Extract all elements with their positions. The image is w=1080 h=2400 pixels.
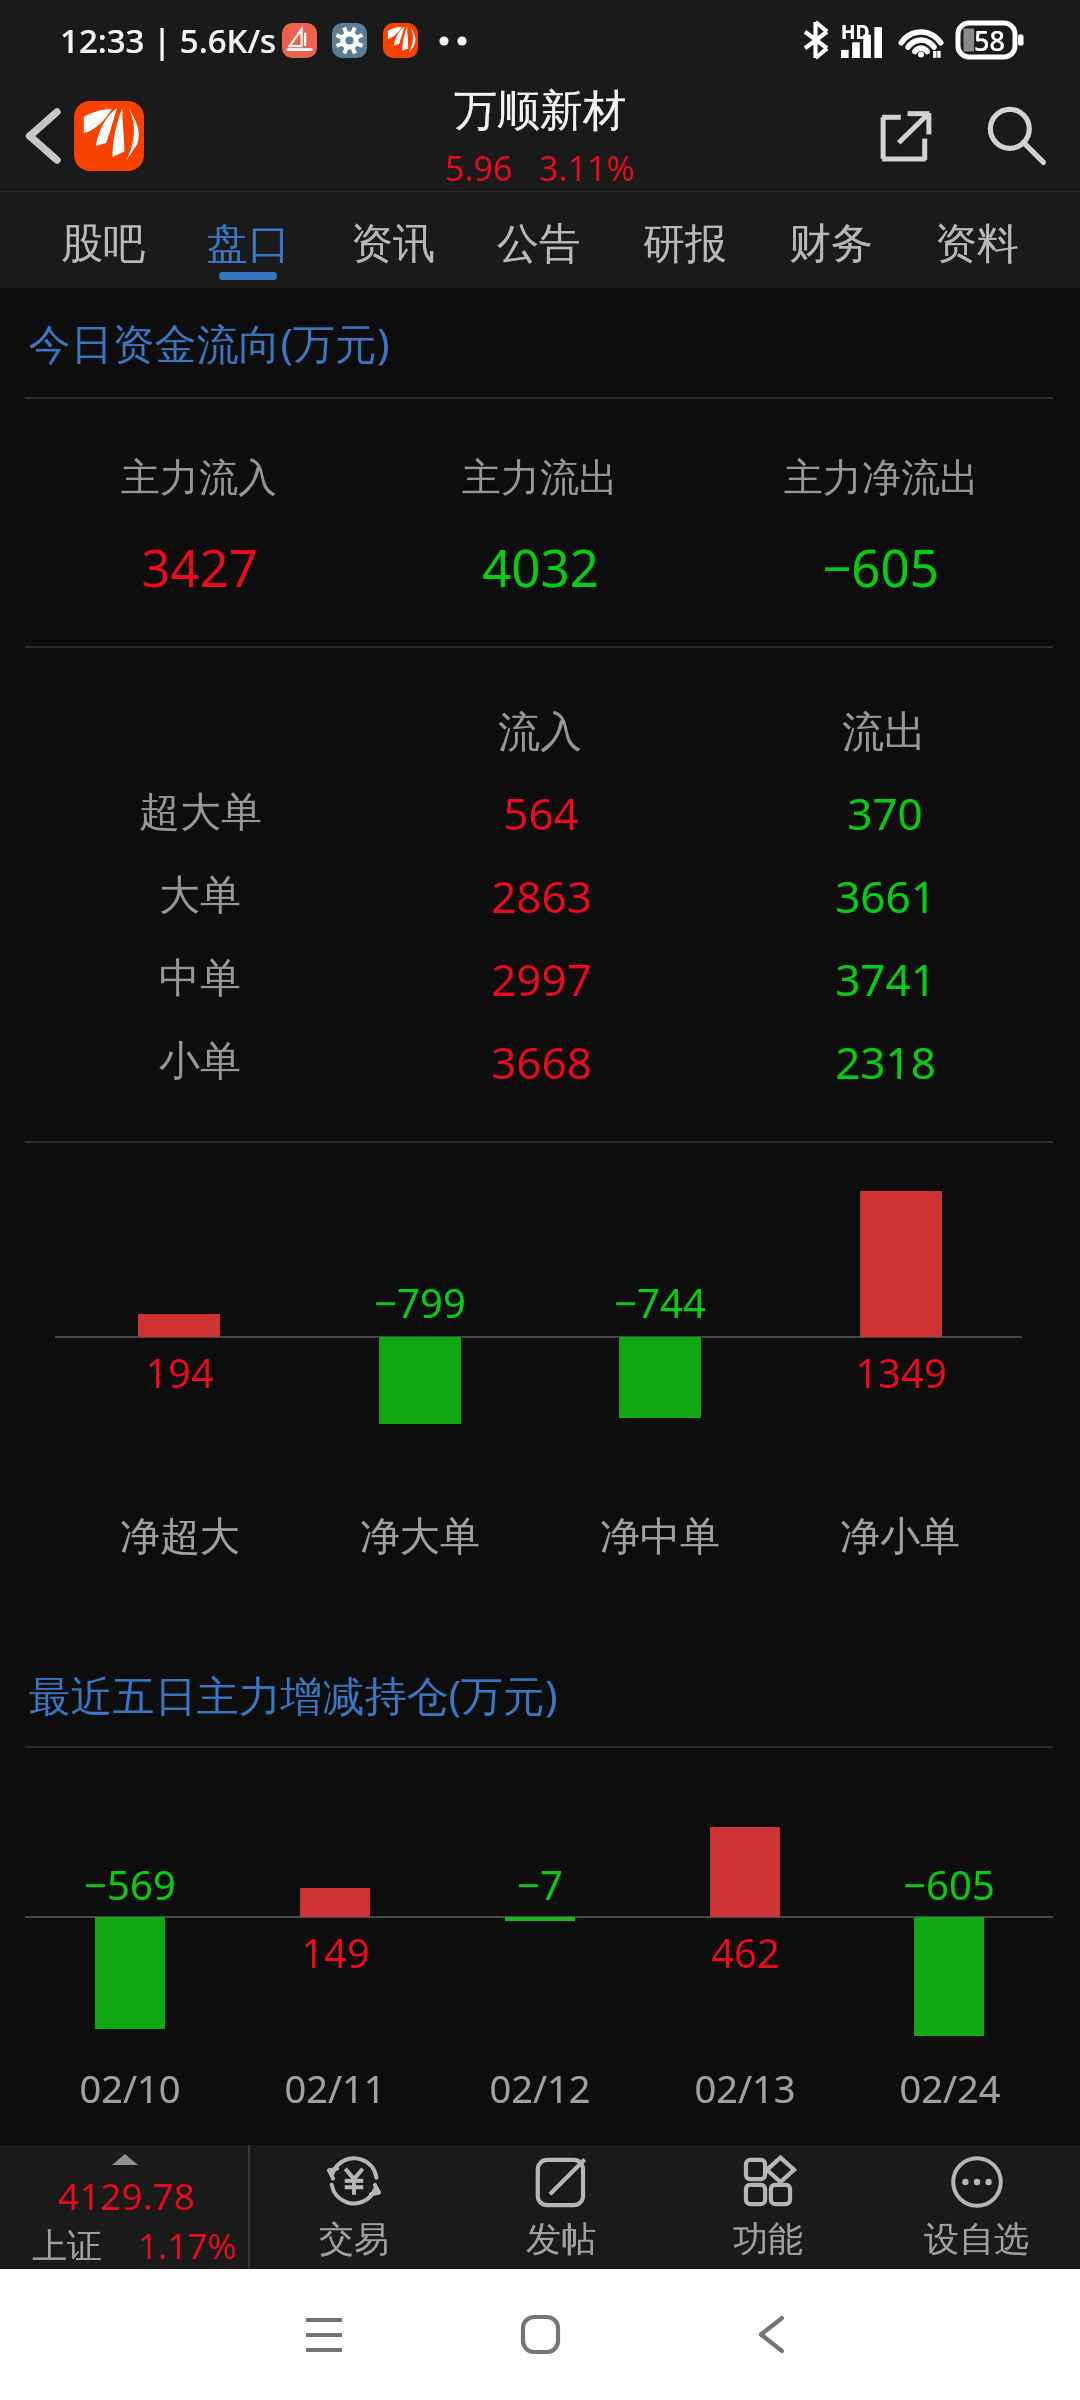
button[interactable]: 财务 (758, 192, 904, 288)
staticText: 上证 (32, 2224, 102, 2268)
staticText: 资料 (935, 218, 1019, 271)
staticText: 194 (145, 1345, 214, 1399)
staticText: 462 (711, 1925, 780, 1979)
staticText: 最近五日主力增减持仓(万元) (28, 1666, 558, 1723)
staticText: −605 (903, 1857, 995, 1911)
staticText: 3661 (835, 866, 936, 926)
button[interactable]: 资讯 (320, 192, 466, 288)
staticText: 净中单 (600, 1511, 720, 1561)
button[interactable]: 4129.78 (0, 2145, 248, 2269)
staticText: −7 (517, 1857, 563, 1911)
button[interactable]: 盘口 (175, 192, 320, 288)
button[interactable]: 交易 (250, 2145, 457, 2269)
staticText: 564 (503, 783, 579, 843)
staticText: 净超大 (120, 1511, 240, 1561)
staticText: 流出 (842, 706, 926, 759)
staticText: 盘口 (206, 218, 290, 271)
staticText: 股吧 (61, 218, 145, 271)
button[interactable]: 发帖 (457, 2145, 664, 2269)
staticText: 3668 (491, 1032, 592, 1092)
staticText: 58 (974, 22, 1005, 58)
staticText: −744 (614, 1275, 706, 1329)
staticText: 资讯 (351, 218, 435, 271)
button[interactable]: 研报 (612, 192, 758, 288)
staticText: 公告 (497, 218, 581, 271)
staticText: 370 (847, 783, 923, 843)
button[interactable]: 公告 (466, 192, 612, 288)
staticText: 2997 (491, 949, 592, 1009)
staticText: 5.96 (445, 145, 513, 191)
staticText: 02/10 (79, 2062, 181, 2114)
staticText: 3741 (835, 949, 936, 1009)
staticText: 2318 (835, 1032, 936, 1092)
staticText: 超大单 (139, 787, 262, 839)
staticText: 02/13 (694, 2062, 796, 2114)
staticText: 大单 (159, 870, 241, 922)
button[interactable]: Back (648, 2269, 864, 2400)
staticText: 主力流出 (462, 453, 618, 502)
button[interactable]: Share (860, 90, 952, 182)
staticText: 设自选 (924, 2217, 1029, 2261)
button[interactable]: Home (432, 2269, 648, 2400)
button[interactable]: 功能 (664, 2145, 872, 2269)
staticText: 中单 (159, 953, 241, 1005)
staticText: 主力流入 (121, 453, 277, 502)
staticText: −799 (374, 1275, 466, 1329)
staticText: 主力净流出 (784, 453, 979, 502)
staticText: 4129.78 (58, 2170, 195, 2220)
staticText: 流入 (498, 706, 582, 759)
button[interactable]: 股吧 (30, 192, 175, 288)
staticText: 财务 (789, 218, 873, 271)
staticText: −569 (84, 1857, 176, 1911)
staticText: 研报 (643, 218, 727, 271)
staticText: 3427 (141, 532, 258, 601)
staticText: 交易 (319, 2217, 389, 2261)
staticText: 万顺新材 (454, 84, 626, 138)
staticText: 02/24 (899, 2062, 1001, 2114)
button[interactable]: Back (0, 80, 88, 192)
staticText: 1349 (855, 1345, 947, 1399)
staticText: 2863 (491, 866, 592, 926)
staticText: 4032 (482, 532, 599, 601)
staticText: 149 (301, 1925, 370, 1979)
staticText: 功能 (733, 2217, 803, 2261)
staticText: 02/12 (489, 2062, 591, 2114)
staticText: 净大单 (360, 1511, 480, 1561)
staticText: 净小单 (840, 1511, 960, 1561)
staticText: 3.11% (539, 145, 635, 191)
button[interactable]: 资料 (904, 192, 1050, 288)
staticText: 小单 (159, 1036, 241, 1088)
button[interactable]: Eastmoney (74, 101, 144, 171)
staticText: −605 (822, 532, 939, 601)
staticText: 02/11 (284, 2062, 386, 2114)
staticText: 12:33 | 5.6K/s (60, 18, 277, 63)
staticText: HD (841, 19, 870, 45)
button[interactable]: Search (969, 88, 1065, 184)
staticText: 发帖 (526, 2217, 596, 2261)
button[interactable]: Recent apps (216, 2269, 432, 2400)
staticText: 今日资金流向(万元) (28, 314, 390, 371)
button[interactable]: 设自选 (872, 2145, 1080, 2269)
staticText: 1.17% (138, 2222, 237, 2270)
